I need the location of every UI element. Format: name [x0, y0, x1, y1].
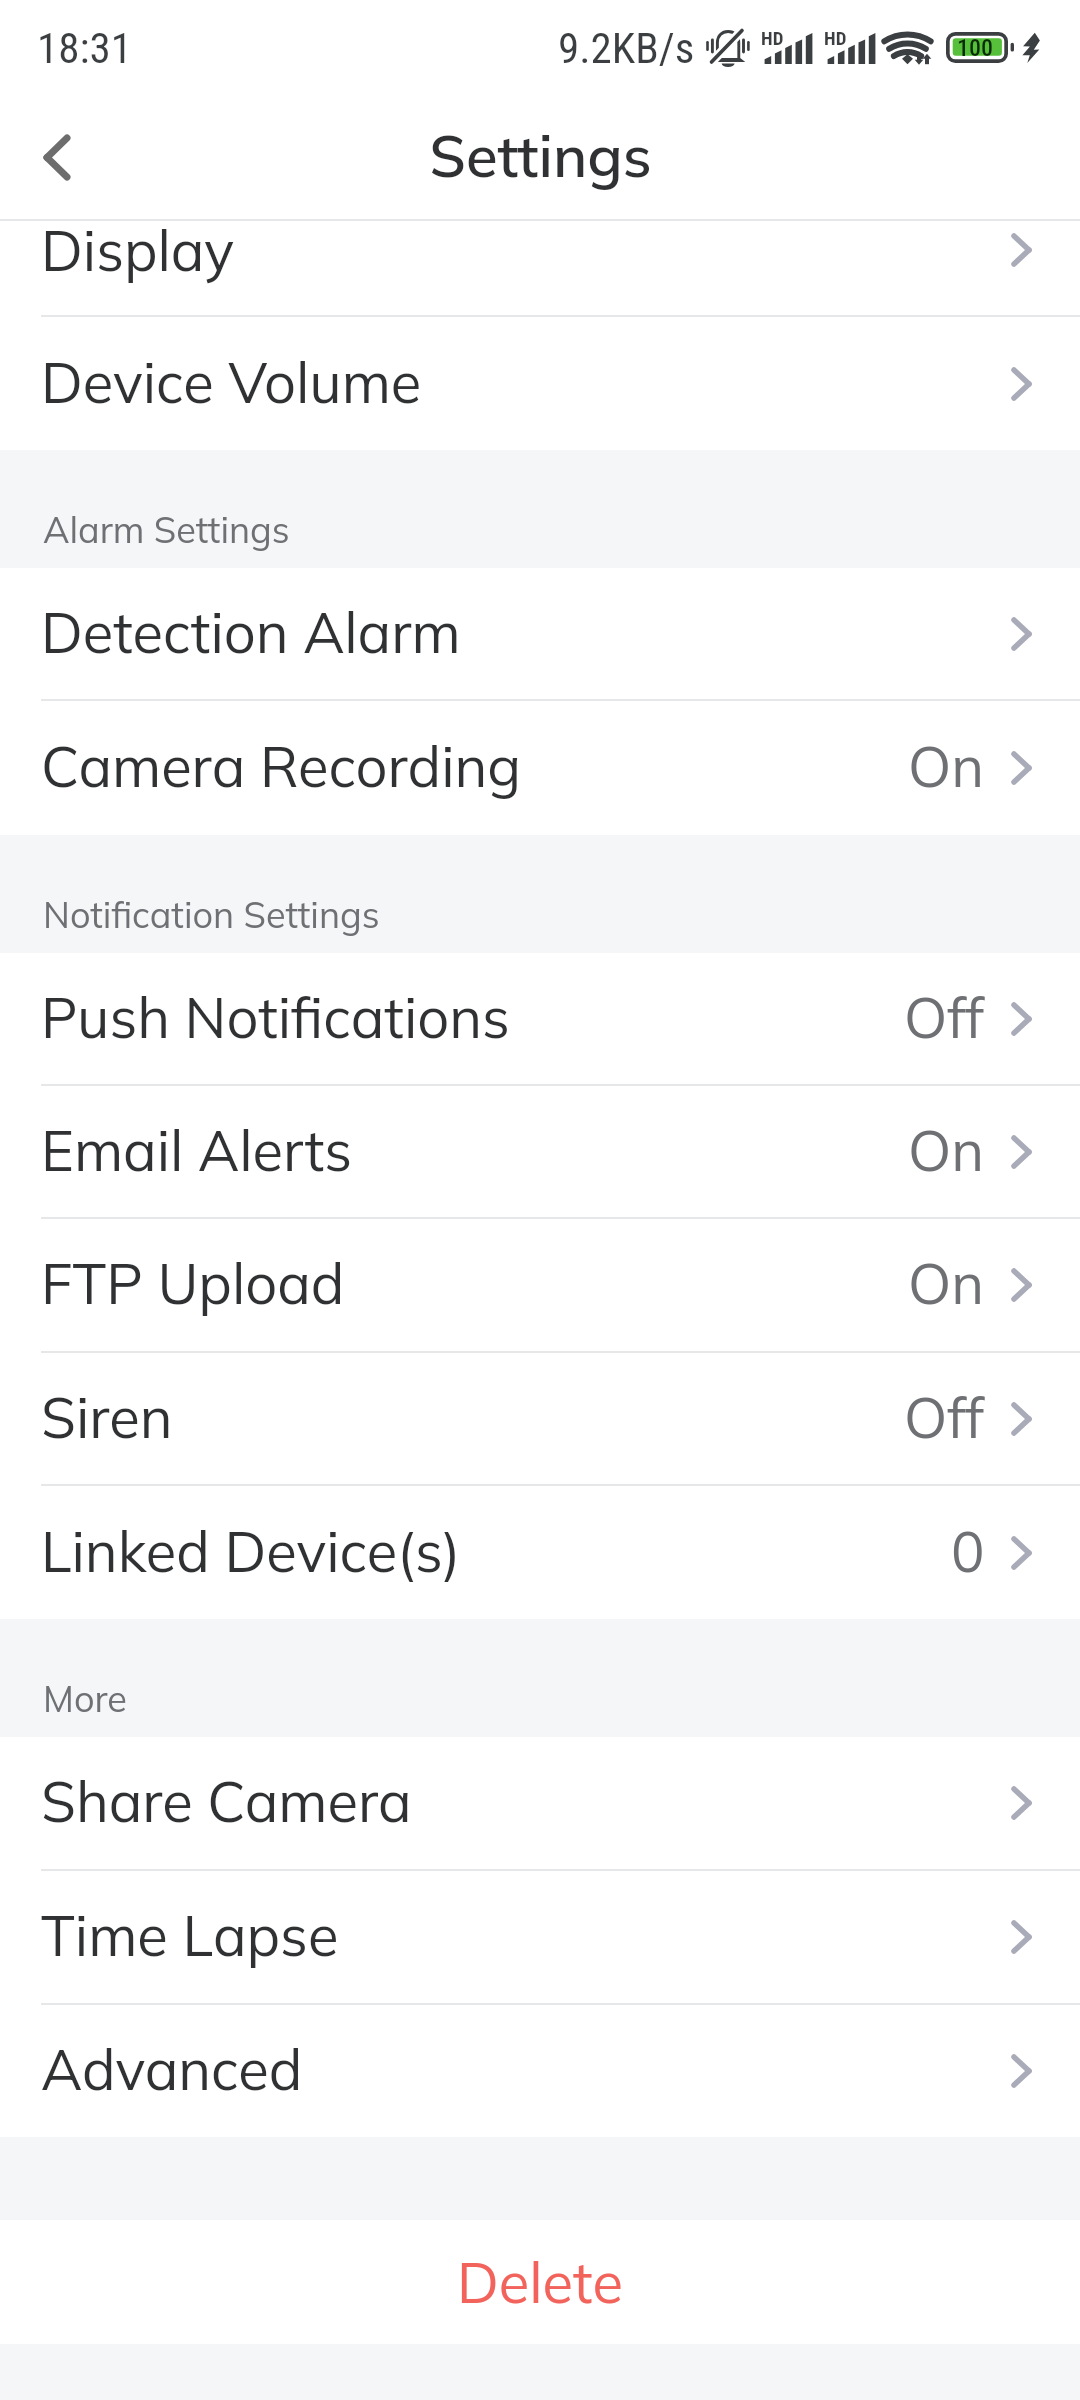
- staticText: HD: [824, 27, 847, 49]
- staticText: Delete: [457, 2247, 623, 2317]
- staticText: 18:31: [37, 23, 132, 73]
- staticText: FTP Upload: [41, 1248, 345, 1318]
- button[interactable]: Siren: [0, 1353, 1080, 1484]
- button[interactable]: FTP Upload: [0, 1219, 1080, 1351]
- button[interactable]: Share Camera: [0, 1737, 1080, 1869]
- staticText: More: [43, 1676, 127, 1721]
- staticText: Siren: [41, 1382, 173, 1452]
- staticText: Notification Settings: [43, 892, 380, 937]
- staticText: Linked Device(s): [41, 1516, 461, 1586]
- staticText: Off: [904, 1382, 985, 1452]
- button[interactable]: Email Alerts: [0, 1086, 1080, 1217]
- staticText: Camera Recording: [41, 731, 522, 801]
- staticText: Advanced: [41, 2034, 303, 2104]
- button[interactable]: Linked Device(s): [0, 1486, 1080, 1619]
- staticText: Display: [41, 215, 234, 285]
- staticText: Alarm Settings: [43, 507, 290, 552]
- button[interactable]: Push Notifications: [0, 953, 1080, 1084]
- staticText: Time Lapse: [41, 1900, 339, 1970]
- button[interactable]: Back: [0, 98, 114, 212]
- button[interactable]: Display: [0, 221, 1080, 315]
- button[interactable]: Detection Alarm: [0, 568, 1080, 699]
- staticText: On: [908, 1115, 985, 1185]
- staticText: 9.2KB/s: [558, 23, 695, 73]
- button[interactable]: Delete: [0, 2220, 1080, 2344]
- staticText: On: [908, 1248, 985, 1318]
- button[interactable]: Advanced: [0, 2005, 1080, 2137]
- staticText: Email Alerts: [41, 1115, 353, 1185]
- staticText: Device Volume: [41, 347, 422, 417]
- staticText: Settings: [429, 119, 652, 192]
- staticText: Share Camera: [41, 1766, 412, 1836]
- staticText: 0: [951, 1516, 985, 1586]
- staticText: HD: [761, 27, 784, 49]
- staticText: On: [908, 731, 985, 801]
- staticText: Off: [904, 982, 985, 1052]
- staticText: Detection Alarm: [41, 597, 461, 667]
- staticText: Push Notifications: [41, 982, 510, 1052]
- staticText: 100: [957, 34, 993, 62]
- button[interactable]: Device Volume: [0, 317, 1080, 450]
- button[interactable]: Camera Recording: [0, 701, 1080, 835]
- button[interactable]: Time Lapse: [0, 1871, 1080, 2003]
